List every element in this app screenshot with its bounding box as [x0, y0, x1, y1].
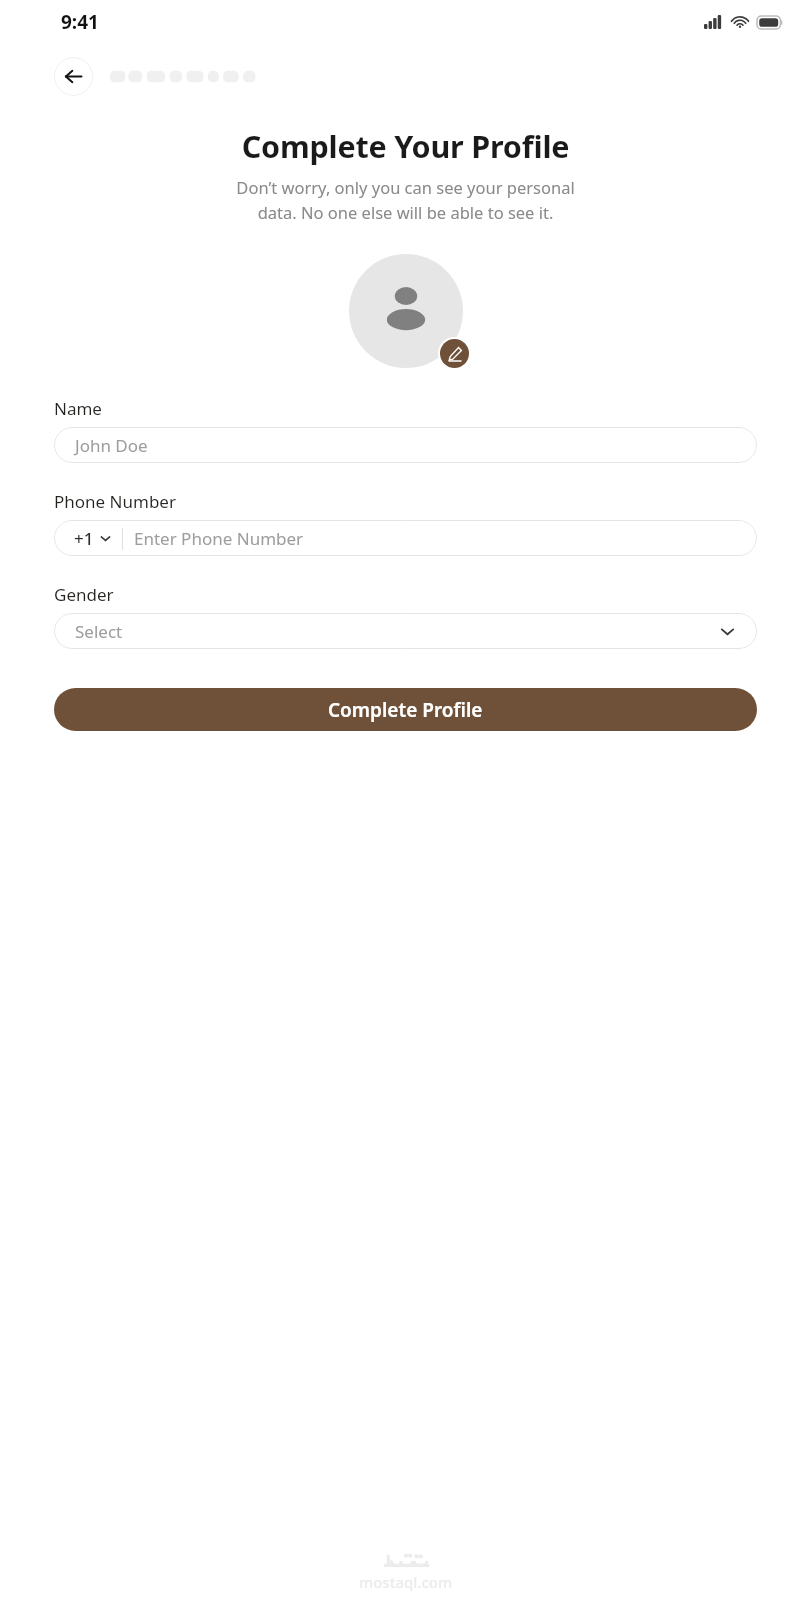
button[interactable]: +1: [54, 520, 757, 556]
staticText: Phone Number: [54, 490, 176, 513]
button[interactable]: Select: [54, 613, 757, 649]
staticText: +1: [74, 527, 94, 550]
button[interactable]: Edit profile photo: [440, 339, 469, 368]
button[interactable]: Complete Profile: [54, 688, 757, 731]
staticText: Don’t worry, only you can see your perso…: [40, 176, 771, 223]
staticText: Select: [75, 620, 123, 643]
staticText: Complete Your Profile: [0, 125, 811, 167]
staticText: John Doe: [75, 434, 148, 457]
staticText: 9:41: [61, 9, 99, 35]
staticText: Gender: [54, 583, 114, 606]
button[interactable]: Back: [54, 57, 93, 96]
button[interactable]: [349, 254, 463, 368]
staticText: Enter Phone Number: [134, 527, 304, 550]
staticText: Complete Profile: [328, 697, 483, 723]
button[interactable]: John Doe: [54, 427, 757, 463]
staticText: Name: [54, 397, 102, 420]
button[interactable]: +1: [74, 527, 111, 550]
staticText: mostaql.com: [359, 1572, 453, 1592]
